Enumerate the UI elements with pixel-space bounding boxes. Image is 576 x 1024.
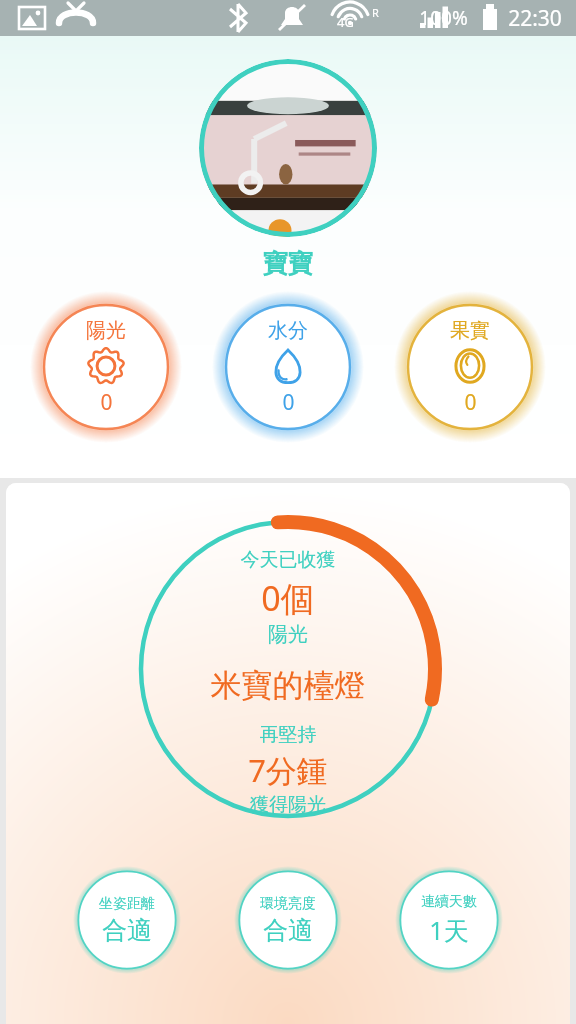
staticText: 果實: [450, 318, 490, 343]
button[interactable]: 陽光: [30, 291, 182, 443]
staticText: 4G: [337, 13, 354, 31]
staticText: 獲得陽光: [132, 793, 444, 817]
staticText: 環境亮度: [260, 895, 316, 913]
staticText: 7分鍾: [132, 749, 444, 791]
staticText: 連續天數: [421, 893, 477, 911]
staticText: 0: [464, 388, 477, 417]
staticText: 今天已收獲: [132, 548, 444, 572]
button[interactable]: 果實: [394, 291, 546, 443]
staticText: 米寶的檯燈: [132, 666, 444, 705]
button[interactable]: 今天已收獲: [132, 513, 444, 825]
staticText: 1天: [429, 913, 469, 947]
staticText: 陽光: [86, 318, 126, 343]
staticText: R: [372, 5, 379, 20]
staticText: 0: [282, 388, 295, 417]
staticText: 坐姿距離: [99, 895, 155, 913]
staticText: 0個: [132, 575, 444, 621]
button[interactable]: 環境亮度: [234, 866, 342, 974]
staticText: 水分: [268, 318, 308, 343]
staticText: 100%: [419, 5, 468, 31]
button[interactable]: Device photo: [199, 59, 377, 237]
staticText: 合適: [102, 915, 152, 946]
staticText: 22:30: [508, 4, 562, 33]
button[interactable]: 水分: [212, 291, 364, 443]
staticText: 陽光: [132, 622, 444, 647]
staticText: 寶寶: [0, 248, 576, 279]
staticText: 再堅持: [132, 723, 444, 747]
button[interactable]: 連續天數: [395, 866, 503, 974]
staticText: 0: [100, 388, 113, 417]
button[interactable]: 坐姿距離: [73, 866, 181, 974]
staticText: 合適: [263, 915, 313, 946]
